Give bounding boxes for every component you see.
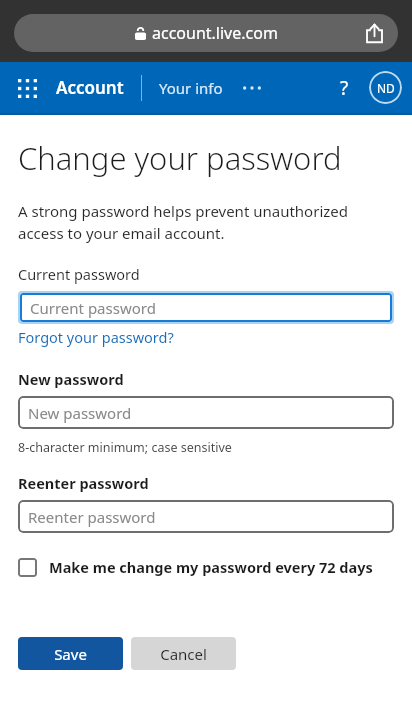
staticText: Current password	[30, 298, 156, 318]
staticText: Current password	[18, 264, 140, 284]
staticText: Reenter password	[28, 507, 156, 527]
staticText: ?	[340, 75, 349, 101]
button[interactable]: Your info	[159, 78, 223, 98]
button[interactable]: Current password	[20, 293, 392, 322]
staticText: ND	[377, 80, 395, 96]
button[interactable]: Account	[56, 76, 124, 99]
button[interactable]: Reenter password	[18, 500, 394, 533]
button[interactable]: More	[239, 75, 265, 101]
button[interactable]: Account ND	[369, 71, 402, 104]
staticText: Cancel	[160, 644, 207, 664]
button[interactable]: Share	[360, 19, 388, 47]
button[interactable]: New password	[18, 396, 394, 429]
staticText: Make me change my password every 72 days	[49, 557, 373, 577]
staticText: Your info	[159, 78, 223, 98]
staticText: New password	[18, 369, 124, 389]
button[interactable]: Help	[329, 73, 359, 103]
staticText: New password	[28, 403, 132, 423]
staticText: Account	[56, 76, 124, 99]
staticText: A strong password helps prevent unauthor…	[18, 201, 394, 244]
staticText: account.live.com	[152, 22, 278, 44]
staticText: Change your password	[18, 137, 342, 179]
button[interactable]: Cancel	[131, 637, 236, 670]
button[interactable]: Save	[18, 637, 123, 670]
staticText: Forgot your password?	[18, 327, 174, 347]
staticText: Save	[54, 644, 87, 664]
button[interactable]: Forgot your password?	[18, 327, 174, 347]
staticText: 8-character minimum; case sensitive	[18, 439, 232, 456]
button[interactable]: account.live.com	[14, 14, 398, 52]
button[interactable]: Make me change my password every 72 days	[18, 557, 394, 577]
button[interactable]: App launcher	[10, 71, 44, 105]
staticText: Reenter password	[18, 473, 149, 493]
